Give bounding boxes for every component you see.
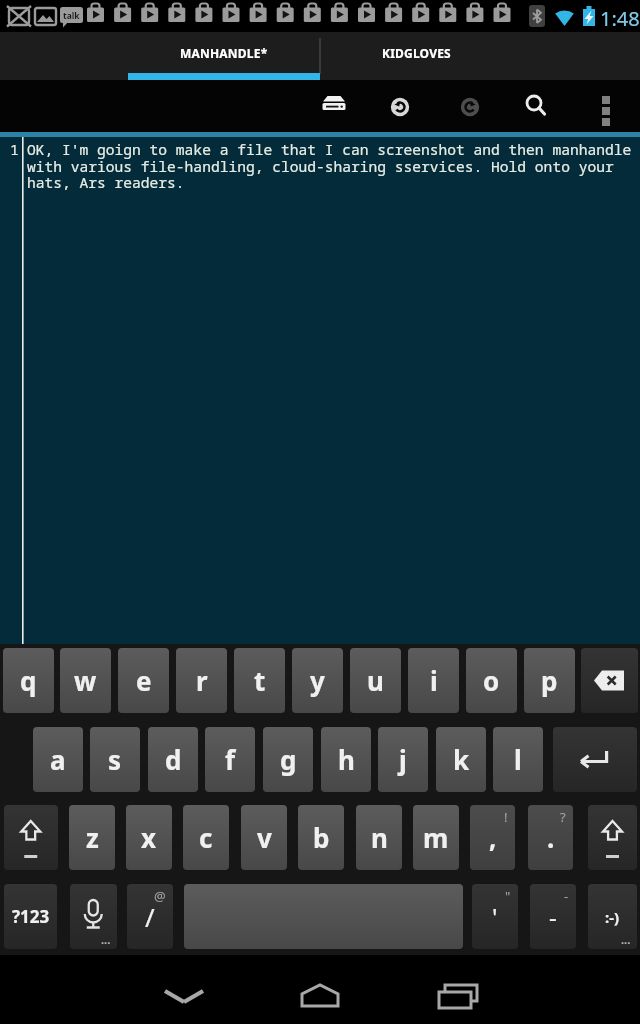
staticText: ...	[101, 932, 111, 947]
staticText: k	[453, 742, 470, 777]
staticText: talk	[63, 10, 80, 22]
button[interactable]: h	[321, 727, 371, 792]
button[interactable]: n	[356, 805, 402, 870]
button[interactable]: r	[176, 648, 227, 713]
button[interactable]	[513, 83, 561, 131]
staticText: with various file-handling, cloud-sharin…	[27, 156, 614, 176]
button[interactable]: f	[205, 727, 255, 792]
button[interactable]: t	[234, 648, 285, 713]
staticText: g	[280, 742, 297, 777]
button[interactable]: .	[528, 805, 573, 870]
staticText: ,	[489, 820, 497, 855]
button[interactable]	[376, 83, 424, 131]
button[interactable]: p	[524, 648, 575, 713]
button[interactable]: /	[127, 884, 173, 949]
staticText: /	[145, 899, 155, 934]
staticText: 1	[10, 139, 19, 159]
staticText: ...	[621, 932, 631, 947]
staticText: .	[547, 820, 555, 855]
button[interactable]: x	[126, 805, 172, 870]
button[interactable]: ,	[470, 805, 515, 870]
staticText: z	[86, 820, 99, 855]
button[interactable]: v	[241, 805, 287, 870]
button[interactable]	[310, 83, 358, 131]
button[interactable]: m	[413, 805, 459, 870]
staticText: KIDGLOVES	[382, 45, 451, 61]
button[interactable]: -	[530, 884, 576, 949]
button[interactable]	[144, 955, 224, 1024]
staticText: j	[399, 742, 407, 777]
staticText: c	[199, 820, 213, 855]
button[interactable]: i	[408, 648, 459, 713]
staticText: :-)	[605, 907, 620, 927]
button[interactable]: a	[33, 727, 83, 792]
staticText: t	[254, 663, 266, 698]
staticText: OK, I'm goign to make a file that I can …	[27, 139, 632, 159]
button[interactable]	[581, 648, 638, 713]
staticText: p	[541, 663, 558, 698]
staticText: ?123	[12, 905, 50, 928]
staticText: i	[430, 663, 438, 698]
staticText: b	[313, 820, 330, 855]
button[interactable]: y	[292, 648, 343, 713]
button[interactable]: e	[118, 648, 169, 713]
staticText: '	[492, 900, 498, 933]
button[interactable]: d	[148, 727, 198, 792]
button[interactable]: b	[298, 805, 344, 870]
button[interactable]: :-)	[588, 884, 637, 949]
button[interactable]: k	[436, 727, 486, 792]
staticText: q	[20, 663, 37, 698]
staticText: f	[225, 742, 236, 777]
button[interactable]	[553, 727, 637, 792]
staticText: "	[505, 887, 511, 905]
button[interactable]	[280, 955, 360, 1024]
staticText: r	[196, 663, 208, 698]
staticText: u	[367, 663, 384, 698]
staticText: y	[310, 663, 325, 698]
button[interactable]: j	[378, 727, 428, 792]
staticText: h	[338, 742, 355, 777]
button[interactable]: g	[263, 727, 313, 792]
button[interactable]: q	[3, 648, 54, 713]
staticText: ?	[560, 808, 566, 826]
button[interactable]	[4, 805, 58, 870]
button[interactable]: w	[60, 648, 111, 713]
button[interactable]: o	[466, 648, 517, 713]
staticText: -	[549, 900, 557, 933]
staticText: n	[371, 820, 388, 855]
staticText: s	[108, 742, 122, 777]
staticText: @	[154, 887, 166, 905]
staticText: hats, Ars readers.	[27, 172, 185, 192]
staticText: d	[165, 742, 182, 777]
staticText: o	[483, 663, 500, 698]
button[interactable]	[418, 955, 498, 1024]
button[interactable]: MANHANDLE*	[128, 32, 320, 80]
staticText: -	[564, 887, 569, 905]
button[interactable]: l	[493, 727, 543, 792]
button[interactable]: z	[69, 805, 115, 870]
staticText: a	[50, 742, 66, 777]
button[interactable]: ...	[70, 884, 117, 949]
staticText: e	[136, 663, 152, 698]
button[interactable]: c	[183, 805, 229, 870]
staticText: x	[141, 820, 157, 855]
staticText: MANHANDLE*	[180, 45, 268, 61]
button[interactable]: ?123	[4, 884, 57, 949]
staticText: w	[74, 663, 97, 698]
staticText: l	[514, 742, 522, 777]
button[interactable]	[184, 884, 463, 949]
staticText: 1:48	[600, 5, 640, 32]
button[interactable]: 1	[0, 137, 640, 644]
button[interactable]: '	[472, 884, 518, 949]
button[interactable]	[588, 805, 637, 870]
button[interactable]	[586, 83, 626, 131]
button[interactable]: KIDGLOVES	[320, 32, 512, 80]
button[interactable]: u	[350, 648, 401, 713]
staticText: v	[257, 820, 272, 855]
staticText: m	[423, 820, 449, 855]
button[interactable]: s	[90, 727, 140, 792]
staticText: !	[504, 808, 508, 826]
